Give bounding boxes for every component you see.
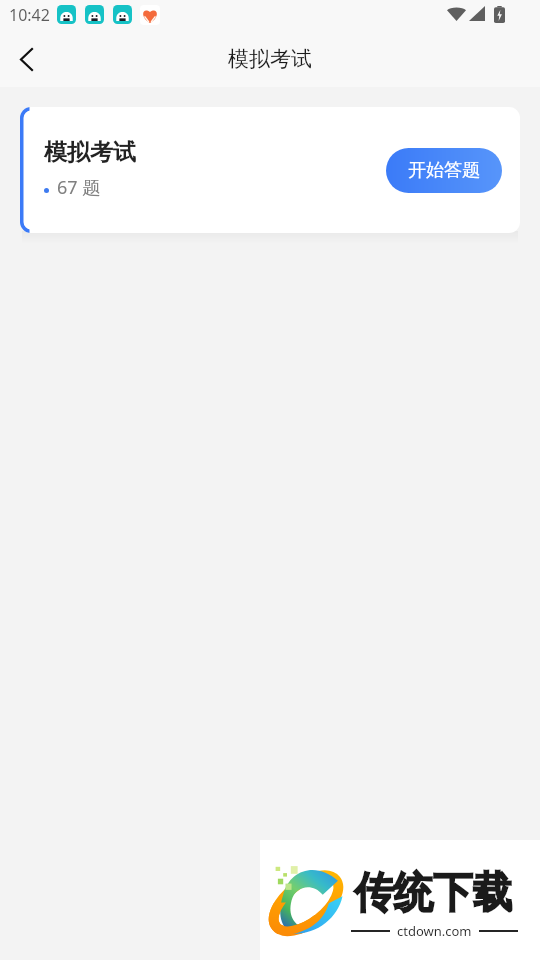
staticText: 10:42 — [9, 4, 50, 26]
staticText: 传统下载 — [354, 866, 512, 919]
button[interactable]: Back — [2, 35, 50, 83]
staticText: 开始答题 — [408, 159, 480, 182]
button[interactable]: 模拟考试 — [20, 107, 520, 233]
staticText: ctdown.com — [397, 922, 472, 940]
staticText: 模拟考试 — [228, 46, 312, 72]
staticText: 67 题 — [57, 175, 101, 200]
button[interactable]: 开始答题 — [386, 148, 502, 193]
staticText: 模拟考试 — [44, 138, 136, 167]
